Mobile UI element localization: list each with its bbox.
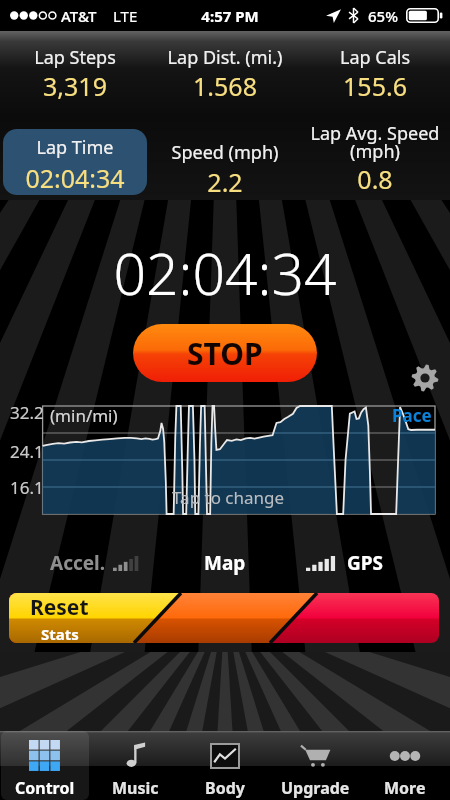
staticText: 16.1 bbox=[10, 476, 44, 499]
staticText: Lap Dist. (mi.) bbox=[150, 45, 300, 70]
staticText: Tap to change bbox=[172, 486, 285, 509]
button[interactable]: 32.2 bbox=[5, 396, 445, 522]
staticText: Lap Steps bbox=[0, 45, 150, 70]
staticText: Pace bbox=[392, 404, 432, 427]
button[interactable]: Reset bbox=[9, 593, 109, 643]
staticText: LTE bbox=[113, 6, 138, 26]
staticText: Music bbox=[112, 777, 159, 799]
staticText: Lap Time bbox=[3, 135, 147, 160]
staticText: More bbox=[384, 777, 426, 799]
button[interactable]: Upgrade bbox=[271, 731, 359, 800]
button[interactable]: More bbox=[361, 731, 449, 800]
button[interactable]: Music bbox=[91, 731, 179, 800]
button[interactable]: GPS bbox=[306, 545, 384, 581]
staticText: 4:57 PM bbox=[5, 6, 450, 26]
staticText: Body bbox=[205, 777, 245, 799]
button[interactable]: Speed (mph) bbox=[150, 129, 300, 163]
staticText: Reset bbox=[30, 593, 89, 622]
staticText: 1.568 bbox=[150, 69, 300, 103]
staticText: Control bbox=[15, 777, 75, 799]
button[interactable]: STOP bbox=[133, 324, 317, 382]
staticText: (mph) bbox=[300, 139, 450, 164]
button[interactable]: Settings bbox=[411, 364, 439, 392]
staticText: 2.2 bbox=[150, 165, 300, 199]
staticText: 65% bbox=[368, 6, 398, 26]
button[interactable]: Lap Steps bbox=[0, 31, 150, 65]
staticText: Lap Cals bbox=[300, 45, 450, 70]
staticText: 3,319 bbox=[0, 69, 150, 103]
staticText: Upgrade bbox=[281, 777, 350, 799]
staticText: 24.1 bbox=[10, 440, 44, 463]
button[interactable]: Body bbox=[181, 731, 269, 800]
staticText: GPS bbox=[347, 550, 384, 576]
staticText: STOP bbox=[187, 333, 263, 374]
button[interactable]: Lap Dist. (mi.) bbox=[150, 31, 300, 65]
button[interactable]: Lap Time bbox=[3, 129, 147, 195]
staticText: 0.8 bbox=[300, 162, 450, 196]
staticText: Lap Avg. Speed bbox=[300, 121, 450, 146]
staticText: 32.2 bbox=[10, 401, 44, 424]
staticText: 02:04:34 bbox=[0, 234, 450, 312]
button[interactable]: Lap Cals bbox=[300, 31, 450, 65]
button[interactable]: Map bbox=[204, 550, 246, 576]
button[interactable]: Lap Avg. Speed bbox=[300, 129, 450, 163]
staticText: Stats bbox=[41, 624, 79, 643]
staticText: Speed (mph) bbox=[150, 140, 300, 165]
button[interactable]: Accel. bbox=[50, 550, 140, 576]
staticText: (min/mi) bbox=[50, 404, 118, 427]
button[interactable]: Control bbox=[1, 731, 89, 800]
staticText: 155.6 bbox=[300, 69, 450, 103]
staticText: Accel. bbox=[50, 550, 106, 576]
staticText: 02:04:34 bbox=[3, 161, 147, 195]
staticText: AT&T bbox=[61, 6, 97, 26]
